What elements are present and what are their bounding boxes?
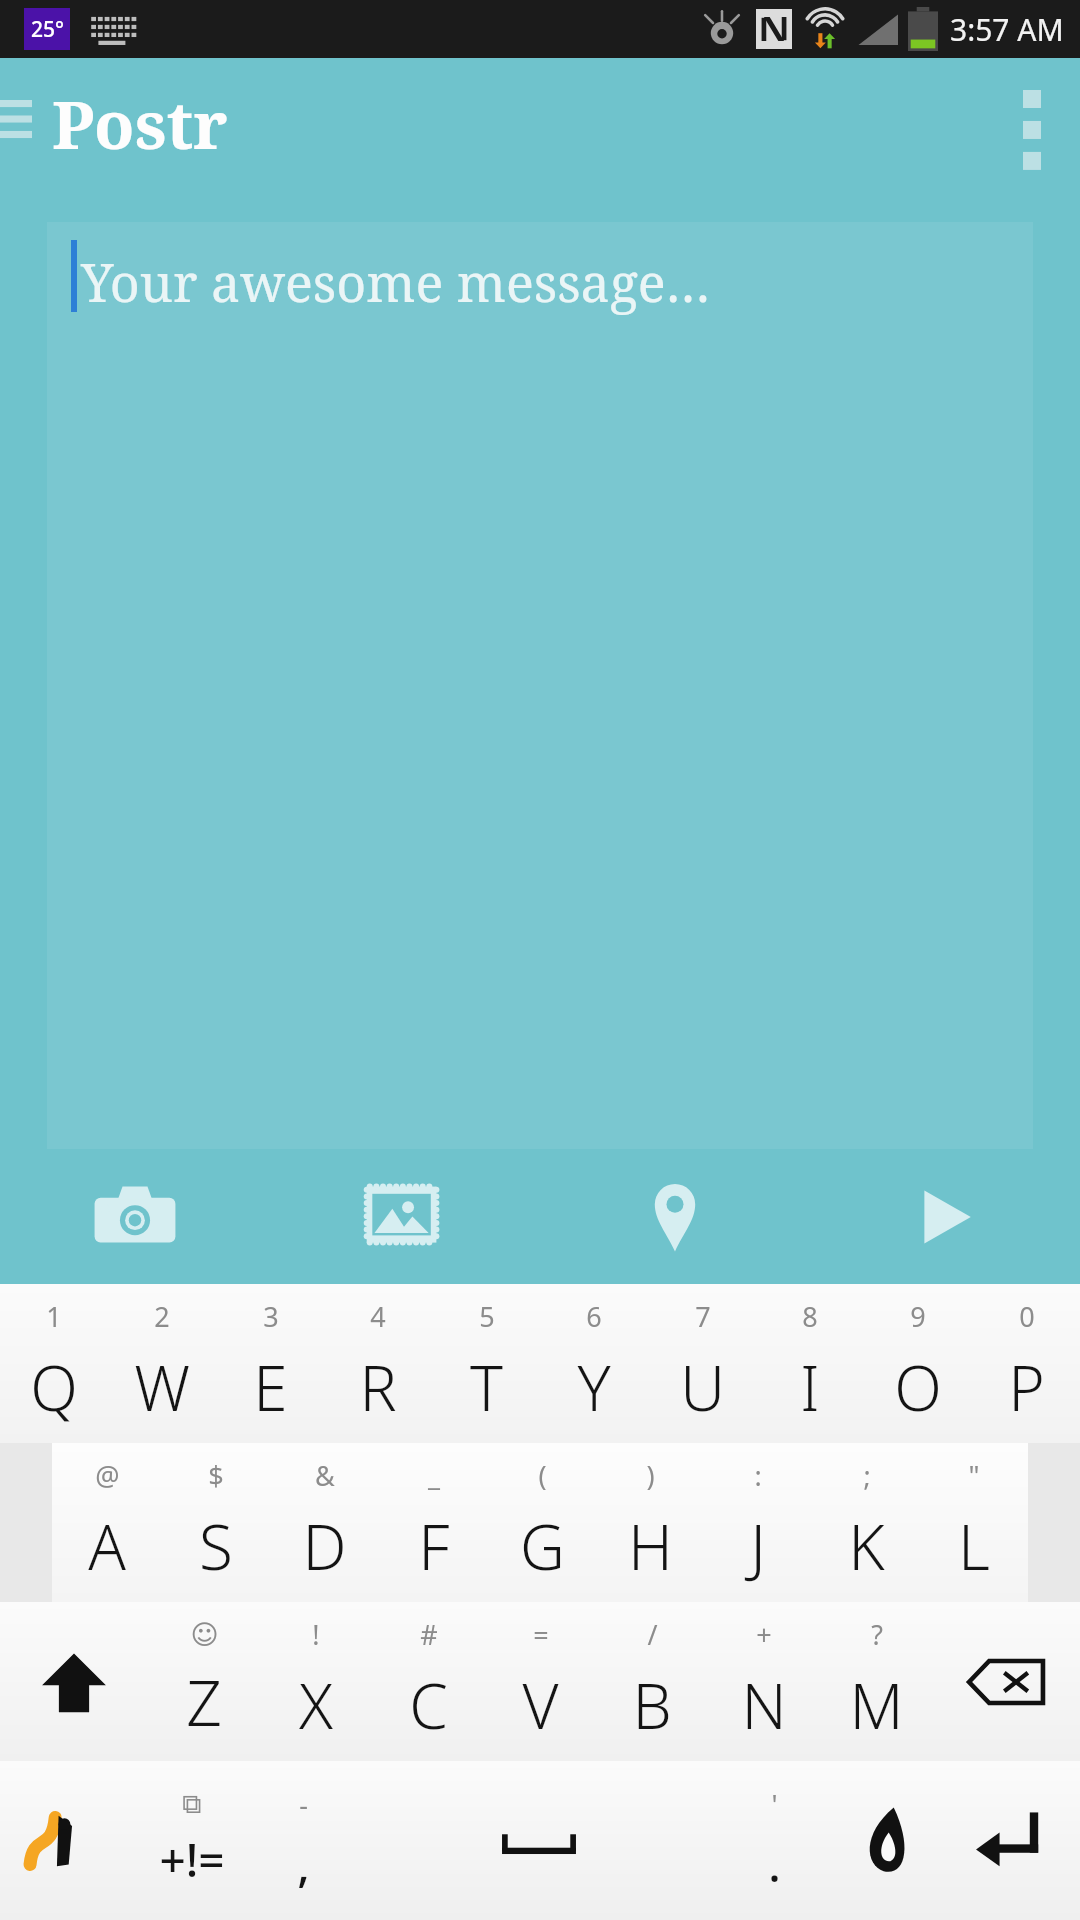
button[interactable]: _ [379, 1443, 488, 1602]
staticText: Z [186, 1660, 222, 1744]
staticText: R [359, 1345, 397, 1429]
button[interactable]: 6 [540, 1284, 648, 1443]
button[interactable]: + [708, 1602, 820, 1761]
button[interactable]: ; [812, 1443, 920, 1602]
staticText: 5 [479, 1298, 495, 1335]
button[interactable]: & [270, 1443, 379, 1602]
button[interactable]: ( [488, 1443, 596, 1602]
staticText: 3 [263, 1298, 279, 1335]
button[interactable]: Backspace [932, 1602, 1080, 1761]
button[interactable]: : [704, 1443, 812, 1602]
staticText: ) [646, 1457, 655, 1494]
button[interactable]: " [920, 1443, 1028, 1602]
staticText: N [741, 1663, 787, 1747]
staticText: F [418, 1504, 450, 1588]
staticText: Your awesome message… [81, 246, 711, 317]
staticText: T [470, 1345, 503, 1429]
button[interactable]: Swipe input [0, 1761, 133, 1920]
button[interactable]: Shift [0, 1602, 148, 1761]
staticText: , [297, 1833, 310, 1896]
staticText: K [848, 1504, 885, 1588]
staticText: . [768, 1833, 781, 1896]
button[interactable]: Voice input [828, 1761, 946, 1920]
staticText: ? [871, 1616, 883, 1653]
staticText: 8 [802, 1298, 818, 1335]
button[interactable]: 9 [864, 1284, 972, 1443]
staticText: B [632, 1663, 672, 1747]
staticText: ; [863, 1457, 871, 1494]
button[interactable]: Send post [810, 1149, 1080, 1284]
staticText: @ [95, 1457, 120, 1494]
button[interactable]: Your awesome message… [47, 222, 1033, 1149]
staticText: C [409, 1663, 448, 1747]
staticText: _ [428, 1457, 440, 1494]
staticText: " [968, 1457, 980, 1494]
button[interactable]: 5 [432, 1284, 540, 1443]
button[interactable]: ☺ [148, 1602, 260, 1761]
button[interactable]: ⧉ [133, 1761, 250, 1920]
button[interactable]: ' [721, 1761, 828, 1920]
staticText: + [756, 1616, 772, 1653]
button[interactable]: 0 [972, 1284, 1080, 1443]
button[interactable]: - [250, 1761, 357, 1920]
staticText: V [522, 1663, 559, 1747]
button[interactable]: # [372, 1602, 484, 1761]
staticText: A [88, 1504, 126, 1588]
staticText: ! [312, 1616, 320, 1653]
button[interactable]: Enter [946, 1761, 1080, 1920]
button[interactable]: = [484, 1602, 596, 1761]
staticText: G [520, 1504, 565, 1588]
staticText: 7 [695, 1298, 711, 1335]
staticText: ' [771, 1786, 778, 1823]
button[interactable]: 1 [0, 1284, 108, 1443]
button[interactable]: More options [984, 63, 1080, 183]
staticText: $ [208, 1457, 224, 1494]
button[interactable]: Space [357, 1761, 721, 1920]
staticText: D [302, 1504, 347, 1588]
button[interactable]: 8 [756, 1284, 864, 1443]
button[interactable]: ) [596, 1443, 704, 1602]
staticText: W [134, 1345, 190, 1429]
staticText: / [647, 1616, 658, 1653]
staticText: P [1008, 1345, 1045, 1429]
staticText: ⧉ [182, 1791, 202, 1818]
button[interactable]: Choose image [270, 1149, 540, 1284]
staticText: 4 [370, 1298, 386, 1335]
button[interactable]: ! [260, 1602, 372, 1761]
staticText: 6 [586, 1298, 602, 1335]
staticText: L [958, 1504, 990, 1588]
staticText: J [750, 1504, 766, 1588]
staticText: 1 [46, 1298, 62, 1335]
staticText: Y [577, 1345, 611, 1429]
staticText: # [420, 1616, 438, 1653]
staticText: : [754, 1457, 762, 1494]
button[interactable]: Open navigation menu [0, 73, 56, 173]
staticText: 9 [910, 1298, 926, 1335]
staticText: S [199, 1504, 233, 1588]
staticText: E [253, 1345, 288, 1429]
staticText: ☺ [190, 1619, 219, 1650]
button[interactable]: 2 [108, 1284, 216, 1443]
staticText: 2 [154, 1298, 170, 1335]
staticText: I [800, 1345, 820, 1429]
button[interactable]: 7 [648, 1284, 756, 1443]
staticText: Postr [52, 78, 228, 168]
button[interactable]: Add location [540, 1149, 810, 1284]
staticText: - [299, 1786, 308, 1823]
staticText: +!= [159, 1828, 225, 1891]
staticText: U [680, 1345, 725, 1429]
button[interactable]: 4 [324, 1284, 432, 1443]
button[interactable]: 3 [216, 1284, 324, 1443]
staticText: H [628, 1504, 673, 1588]
staticText: ( [538, 1457, 547, 1494]
button[interactable]: / [596, 1602, 708, 1761]
button[interactable]: @ [52, 1443, 161, 1602]
staticText: 3:57 AM [950, 9, 1064, 50]
staticText: 0 [1019, 1298, 1035, 1335]
button[interactable]: ? [820, 1602, 932, 1761]
staticText: 25° [31, 15, 64, 44]
button[interactable]: Take photo [0, 1149, 270, 1284]
staticText: & [315, 1457, 335, 1494]
staticText: X [299, 1663, 333, 1747]
button[interactable]: $ [161, 1443, 270, 1602]
